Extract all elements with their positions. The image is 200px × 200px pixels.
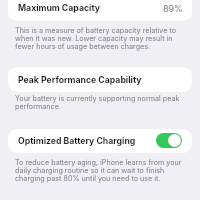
button[interactable]: Optimized Battery Charging (156, 133, 182, 148)
staticText: Optimized Battery Charging (18, 136, 136, 147)
staticText: Your battery is currently supporting nor… (15, 94, 185, 111)
staticText: Maximum Capacity (18, 3, 100, 14)
button[interactable]: Peak Performance Capability (8, 67, 192, 92)
button[interactable]: Maximum Capacity (8, 0, 192, 21)
staticText: This is a measure of battery capacity re… (15, 26, 185, 51)
staticText: 89% (163, 3, 183, 14)
staticText: Peak Performance Capability (18, 75, 142, 86)
button[interactable]: Optimized Battery Charging (8, 129, 192, 153)
staticText: To reduce battery aging, iPhone learns f… (15, 158, 185, 183)
